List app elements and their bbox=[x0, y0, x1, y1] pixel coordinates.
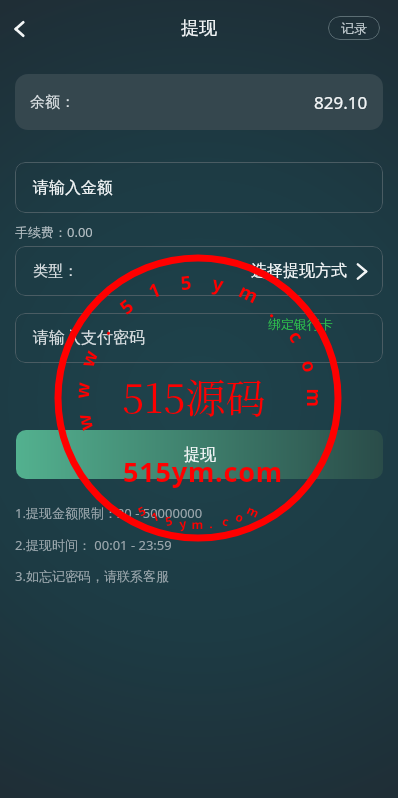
button[interactable]: 余额： bbox=[15, 74, 383, 130]
staticText: 1.提现金额限制：20 - 50000000 bbox=[15, 504, 203, 522]
staticText: 829.10 bbox=[314, 91, 368, 114]
staticText: 选择提现方式 bbox=[251, 261, 347, 281]
staticText: 提现 bbox=[184, 445, 216, 465]
staticText: 余额： bbox=[30, 93, 75, 112]
staticText: 3.如忘记密码，请联系客服 bbox=[15, 567, 169, 585]
staticText: 提现 bbox=[181, 17, 217, 40]
staticText: 绑定银行卡 bbox=[268, 316, 333, 332]
staticText: 类型： bbox=[33, 262, 78, 281]
button[interactable]: 类型： bbox=[15, 246, 383, 296]
staticText: 请输入金额 bbox=[33, 178, 113, 198]
staticText: 2.提现时间： 00:01 - 23:59 bbox=[15, 536, 172, 554]
button[interactable]: 请输入支付密码 bbox=[15, 313, 383, 363]
button[interactable]: 请输入金额 bbox=[15, 162, 383, 213]
staticText: 515ym.com bbox=[123, 453, 283, 490]
staticText: 记录 bbox=[341, 20, 367, 36]
staticText: 请输入支付密码 bbox=[33, 328, 145, 348]
button[interactable]: 提现 bbox=[16, 430, 383, 479]
button[interactable]: Back bbox=[0, 10, 38, 48]
button[interactable]: 绑定银行卡 bbox=[268, 316, 333, 332]
staticText: 手续费：0.00 bbox=[15, 223, 93, 241]
staticText: 515源码 bbox=[122, 367, 266, 424]
button[interactable]: 记录 bbox=[328, 16, 380, 40]
